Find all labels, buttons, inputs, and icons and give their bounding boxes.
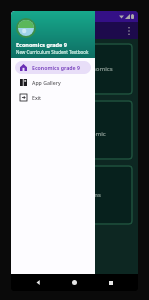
button[interactable]: Open navigation drawer — [15, 24, 29, 38]
staticText: Basic Economic Concepts in Economic — [43, 122, 106, 138]
staticText: Economics grade 9 — [16, 41, 67, 48]
button[interactable]: Recent apps — [102, 274, 119, 291]
staticText: New Curriculum Student Textbook — [16, 49, 89, 55]
staticText: 4:10 — [20, 13, 31, 20]
button[interactable]: More options — [123, 25, 135, 37]
button[interactable]: Economics grade 9 — [15, 61, 91, 74]
button[interactable]: Close navigation drawer — [11, 11, 138, 274]
button[interactable]: Back — [30, 274, 47, 291]
button[interactable]: Home — [66, 274, 83, 291]
staticText: App Gallery — [32, 79, 61, 86]
button[interactable]: Economic Systems — [16, 165, 133, 225]
staticText: Introduction to Economics — [37, 65, 113, 73]
button[interactable]: Exit — [15, 91, 91, 104]
button[interactable]: Basic Economic Concepts in Economic — [16, 100, 133, 160]
staticText: Economics grade 9 — [32, 64, 80, 71]
staticText: Economic Systems — [48, 191, 101, 199]
button[interactable]: App Gallery — [15, 76, 91, 89]
staticText: Exit — [32, 94, 42, 101]
button[interactable]: Introduction to Economics — [16, 43, 133, 95]
